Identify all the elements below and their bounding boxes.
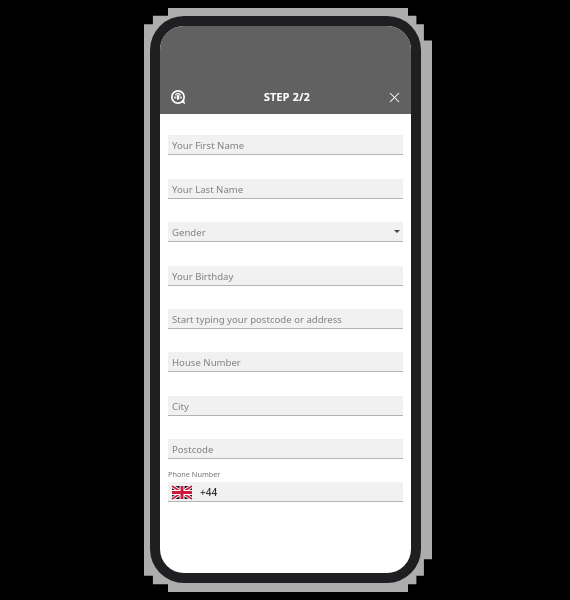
staticText: Your Birthday <box>172 270 234 283</box>
button[interactable]: Your First Name <box>168 135 403 155</box>
button[interactable]: Your Birthday <box>168 266 403 286</box>
staticText: Your Last Name <box>172 183 244 196</box>
button[interactable]: Your Last Name <box>168 179 403 199</box>
button[interactable]: Customer support <box>166 85 190 109</box>
staticText: Your First Name <box>172 139 245 152</box>
button[interactable]: City <box>168 396 403 416</box>
staticText: +44 <box>200 485 218 499</box>
staticText: Start typing your postcode or address <box>172 313 342 326</box>
staticText: STEP 2/2 <box>264 90 311 104</box>
staticText: House Number <box>172 356 241 369</box>
button[interactable]: Postcode <box>168 439 403 459</box>
button[interactable]: Close <box>382 85 406 109</box>
button[interactable]: +44 <box>168 482 403 502</box>
staticText: Phone Number <box>168 469 221 479</box>
staticText: Postcode <box>172 443 214 456</box>
button[interactable]: Gender <box>168 222 403 242</box>
staticText: City <box>172 400 189 413</box>
button[interactable]: Start typing your postcode or address <box>168 309 403 329</box>
staticText: Gender <box>172 226 206 239</box>
button[interactable]: House Number <box>168 352 403 372</box>
